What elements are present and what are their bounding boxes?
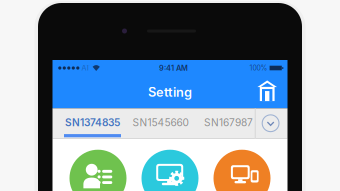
button[interactable]: SN1374835	[58, 108, 126, 138]
button[interactable]: Accounts	[69, 150, 126, 191]
staticText: SN167987	[204, 116, 253, 129]
staticText: Setting	[148, 84, 192, 100]
staticText: 100%	[249, 64, 267, 72]
button[interactable]: Connection	[213, 150, 270, 191]
staticText: SN1545660	[132, 116, 188, 129]
staticText: SN1374835	[65, 116, 120, 129]
staticText: AT	[81, 64, 90, 72]
button[interactable]: SN167987	[194, 108, 262, 138]
button[interactable]: Device settings	[141, 150, 198, 191]
button[interactable]: Home	[254, 80, 280, 104]
button[interactable]: Show more serial numbers	[260, 112, 281, 135]
button[interactable]: SN1545660	[126, 108, 194, 138]
staticText: 9:41 AM	[159, 63, 188, 72]
